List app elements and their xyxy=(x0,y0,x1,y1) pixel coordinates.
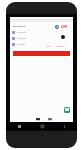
staticText: Garage xyxy=(47,121,53,123)
button[interactable]: Vehicles xyxy=(57,45,65,48)
button[interactable]: Back xyxy=(62,124,66,128)
button[interactable]: Unlocked xyxy=(12,37,26,40)
button[interactable]: Blue Subaru xyxy=(13,25,25,28)
button[interactable]: Garage xyxy=(44,117,55,123)
staticText: Vehicles xyxy=(57,45,65,48)
button[interactable]: Tasks xyxy=(46,45,52,48)
staticText: Charging xyxy=(17,31,26,34)
button[interactable]: Chat xyxy=(64,107,70,113)
button[interactable]: EVR xyxy=(55,25,67,29)
button[interactable]: Home xyxy=(32,117,43,123)
staticText: Home xyxy=(35,121,40,123)
button[interactable]: Home xyxy=(40,124,44,128)
button[interactable]: Profile xyxy=(61,35,65,39)
button[interactable]: Charging xyxy=(12,31,26,34)
staticText: Tasks xyxy=(46,45,52,48)
staticText: Blue Subaru xyxy=(13,25,25,28)
staticText: Unlocked xyxy=(17,37,26,40)
staticText: EVR xyxy=(61,25,67,29)
staticText: 10/25/23 xyxy=(17,43,26,46)
button[interactable]: 10/25/23 xyxy=(12,43,26,46)
button[interactable]: Recents xyxy=(17,124,21,128)
